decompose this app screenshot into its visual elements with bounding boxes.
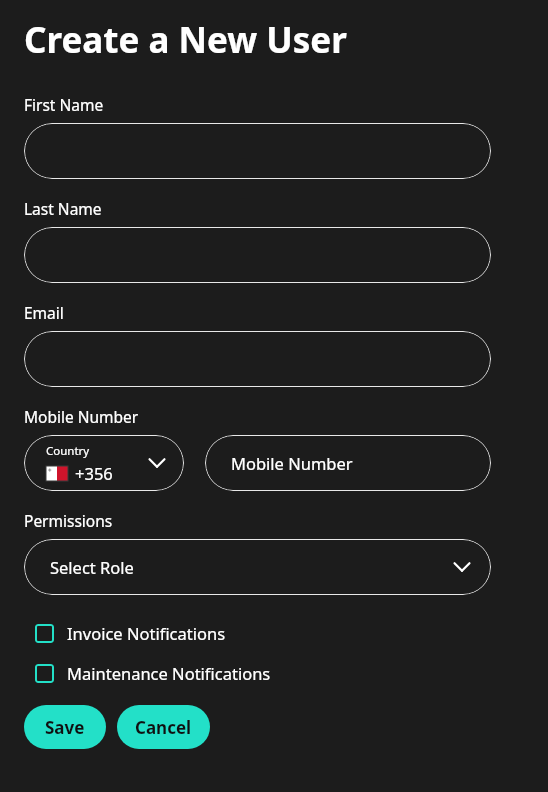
- staticText: Save: [45, 716, 85, 739]
- button[interactable]: Select country calling code: [24, 435, 184, 491]
- button[interactable]: Cancel: [117, 705, 210, 749]
- staticText: Cancel: [135, 716, 192, 739]
- button[interactable]: Email input: [24, 331, 491, 387]
- staticText: Create a New User: [24, 16, 347, 64]
- button[interactable]: First Name input: [24, 123, 491, 179]
- staticText: Select Role: [50, 556, 134, 578]
- staticText: Maintenance Notifications: [67, 662, 271, 684]
- button[interactable]: Last Name input: [24, 227, 491, 283]
- staticText: +356: [75, 462, 113, 484]
- staticText: First Name: [24, 94, 104, 115]
- staticText: Email: [24, 302, 64, 323]
- staticText: Last Name: [24, 198, 102, 219]
- button[interactable]: Select Role dropdown: [24, 539, 491, 595]
- button[interactable]: Maintenance Notifications: [0, 653, 548, 693]
- button[interactable]: Save: [24, 705, 106, 749]
- staticText: Permissions: [24, 510, 113, 531]
- staticText: Country: [46, 443, 90, 459]
- button[interactable]: Invoice Notifications: [0, 613, 548, 653]
- staticText: Mobile Number: [231, 452, 353, 474]
- staticText: Invoice Notifications: [67, 622, 226, 644]
- staticText: Mobile Number: [24, 406, 139, 427]
- button[interactable]: Mobile Number input: [205, 435, 491, 491]
